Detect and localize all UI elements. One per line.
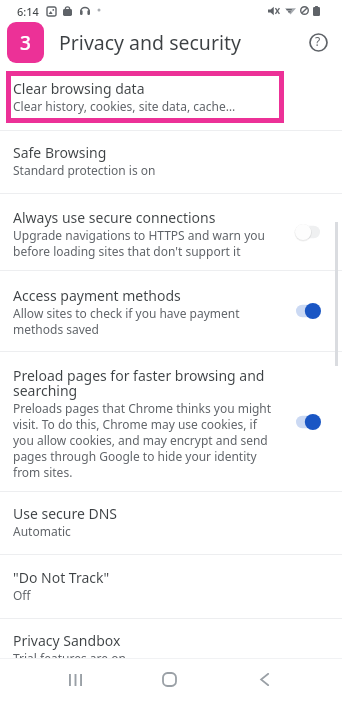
staticText: you allow cookies, and may encrypt and s…: [13, 432, 268, 448]
button[interactable]: Clear browsing data: [6, 71, 284, 123]
staticText: Allow sites to check if you have payment: [13, 305, 240, 321]
button[interactable]: Home: [147, 657, 191, 701]
button[interactable]: Privacy Sandbox: [0, 619, 342, 660]
staticText: Access payment methods: [13, 286, 181, 305]
staticText: pages through Google to hide your identi…: [13, 448, 257, 464]
staticText: "Do Not Track": [13, 568, 110, 587]
staticText: 3: [20, 30, 31, 56]
staticText: visit. To do this, Chrome may use cookie…: [13, 416, 257, 432]
button[interactable]: Safe Browsing: [0, 131, 342, 193]
staticText: Safe Browsing: [13, 143, 107, 162]
staticText: Preload pages for faster browsing and se…: [13, 366, 282, 400]
button[interactable]: Access payment methods: [0, 271, 342, 351]
button[interactable]: Toggle on: [294, 302, 322, 320]
staticText: methods saved: [13, 321, 99, 337]
staticText: from sites.: [13, 464, 73, 480]
staticText: 6:14: [17, 4, 39, 19]
staticText: before loading sites that don't support …: [13, 243, 241, 259]
staticText: ?: [315, 33, 321, 49]
staticText: Off: [13, 587, 31, 603]
button[interactable]: Recent apps: [53, 658, 97, 702]
staticText: Privacy Sandbox: [13, 631, 121, 650]
button[interactable]: Toggle off: [294, 223, 322, 241]
staticText: Clear history, cookies, site data, cache…: [13, 98, 236, 114]
button[interactable]: Preload pages for faster browsing and se…: [0, 352, 342, 491]
button[interactable]: Back: [242, 657, 286, 701]
staticText: Standard protection is on: [13, 162, 156, 178]
staticText: Clear browsing data: [13, 79, 145, 98]
staticText: Use secure DNS: [13, 504, 118, 523]
staticText: Privacy and security: [59, 29, 241, 56]
button[interactable]: Always use secure connections: [0, 194, 342, 270]
staticText: Preloads pages that Chrome thinks you mi…: [13, 400, 272, 416]
staticText: Always use secure connections: [13, 208, 216, 227]
button[interactable]: Use secure DNS: [0, 492, 342, 554]
button[interactable]: Help: [305, 29, 331, 55]
staticText: Trial features are on: [13, 650, 126, 660]
staticText: Upgrade navigations to HTTPS and warn yo…: [13, 227, 265, 243]
button[interactable]: "Do Not Track": [0, 555, 342, 618]
button[interactable]: Toggle on: [294, 413, 322, 431]
staticText: Automatic: [13, 523, 71, 539]
button[interactable]: 3: [7, 22, 44, 63]
